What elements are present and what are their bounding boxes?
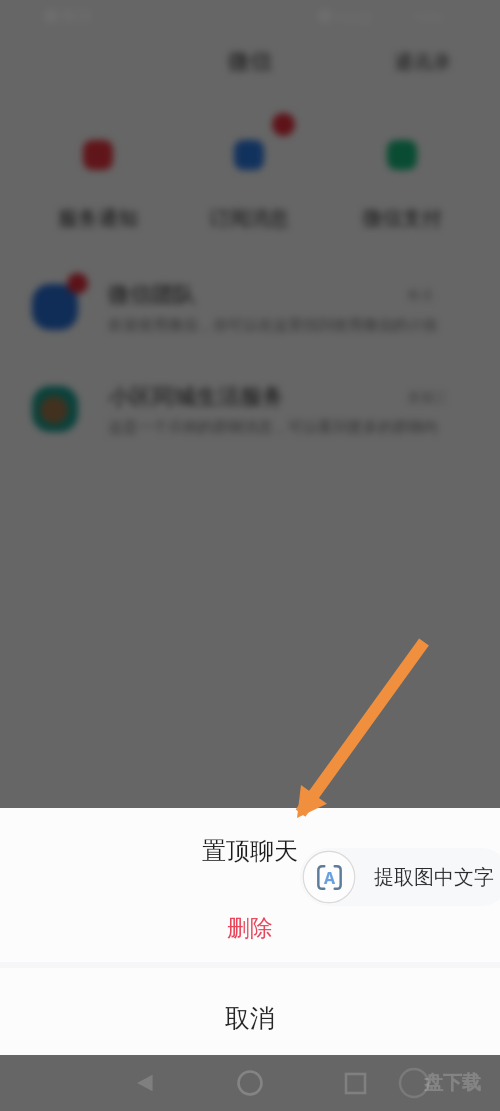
staticText: 取消 — [225, 1003, 275, 1034]
staticText: 通讯录 — [394, 51, 451, 75]
button[interactable]: Recent apps — [330, 1058, 380, 1108]
staticText: A — [324, 867, 336, 889]
staticText: 这是一个示例的群聊消息，可以看到更多的群聊内 — [108, 418, 438, 437]
staticText: 星期三 — [408, 389, 447, 405]
staticText: 微信团队 — [108, 281, 196, 309]
staticText: 小区同城生活服务 — [108, 383, 284, 411]
button[interactable]: 置顶聊天 — [0, 808, 500, 894]
staticText: 微信支付 — [352, 206, 452, 231]
button[interactable]: A — [300, 848, 500, 906]
button[interactable]: Back — [120, 1058, 170, 1108]
button[interactable]: 取消 — [0, 968, 500, 1061]
staticText: 订阅消息 — [199, 206, 299, 231]
staticText: 微信 — [228, 48, 272, 76]
button[interactable]: 删除 — [0, 894, 500, 962]
staticText: 删除 — [227, 914, 273, 943]
staticText: 置顶聊天 — [202, 836, 298, 866]
staticText: 欢迎使用微信，你可以在这里找到使用微信的小技 — [108, 316, 438, 335]
staticText: 盘下载 — [424, 1071, 481, 1095]
staticText: 服务通知 — [48, 206, 148, 231]
button[interactable]: Home — [225, 1058, 275, 1108]
staticText: 提取图中文字 — [374, 865, 494, 890]
